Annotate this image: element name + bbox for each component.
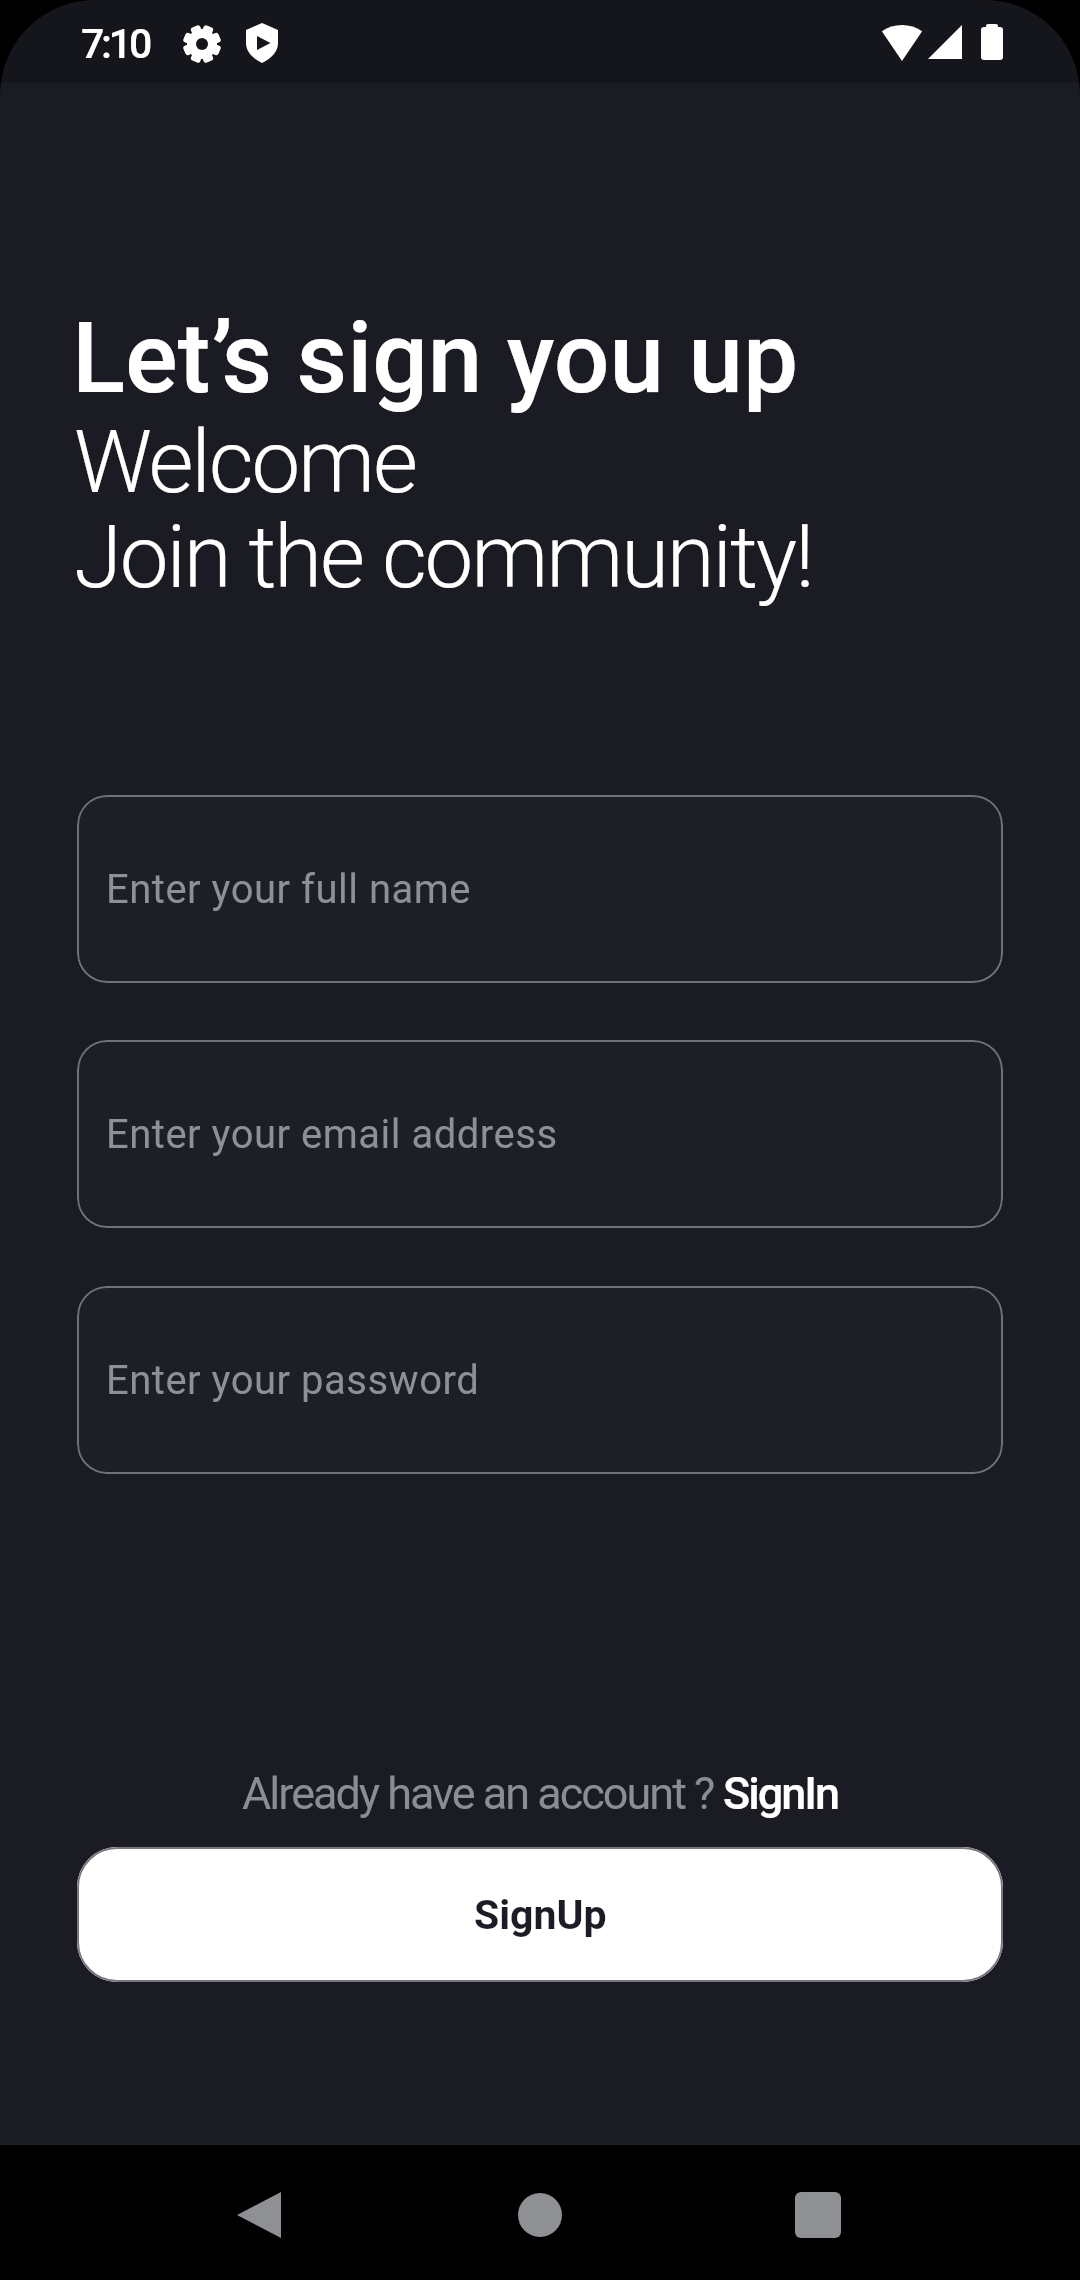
staticText: Enter your full name [106, 866, 472, 913]
button[interactable]: SignUp [77, 1847, 1003, 1982]
staticText: Enter your password [106, 1357, 480, 1404]
staticText: Already have an account ? [242, 1767, 723, 1820]
button[interactable]: Enter your email address [77, 1040, 1003, 1228]
staticText: SignUp [474, 1891, 607, 1939]
button[interactable]: SignIn [723, 1767, 838, 1820]
staticText: Join the community! [74, 506, 813, 608]
button[interactable]: Enter your full name [77, 795, 1003, 983]
staticText: Enter your email address [106, 1111, 558, 1158]
staticText: 7:10 [81, 20, 149, 68]
staticText: Welcome [74, 411, 416, 513]
button[interactable]: Enter your password [77, 1286, 1003, 1474]
staticText: Let’s sign you up [72, 301, 799, 416]
